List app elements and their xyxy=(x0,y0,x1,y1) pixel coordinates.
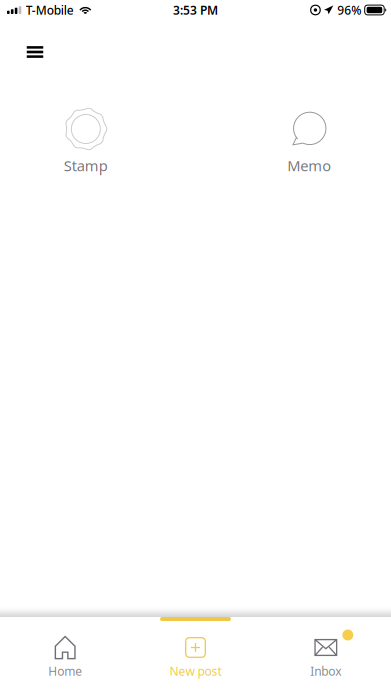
staticText: New post xyxy=(169,663,221,679)
staticText: Stamp xyxy=(64,156,108,175)
button[interactable]: New post xyxy=(130,617,261,693)
staticText: Memo xyxy=(287,156,331,175)
staticText: 3:53 PM xyxy=(173,2,218,18)
staticText: 96% xyxy=(337,2,361,18)
staticText: T-Mobile xyxy=(26,2,74,18)
staticText: Inbox xyxy=(310,663,341,679)
button[interactable]: Memo xyxy=(253,106,365,173)
button[interactable]: Home xyxy=(0,617,130,693)
staticText: Home xyxy=(48,663,82,679)
button[interactable]: Menu xyxy=(14,33,56,71)
button[interactable]: Inbox xyxy=(261,617,391,693)
button[interactable]: Stamp xyxy=(30,106,142,173)
